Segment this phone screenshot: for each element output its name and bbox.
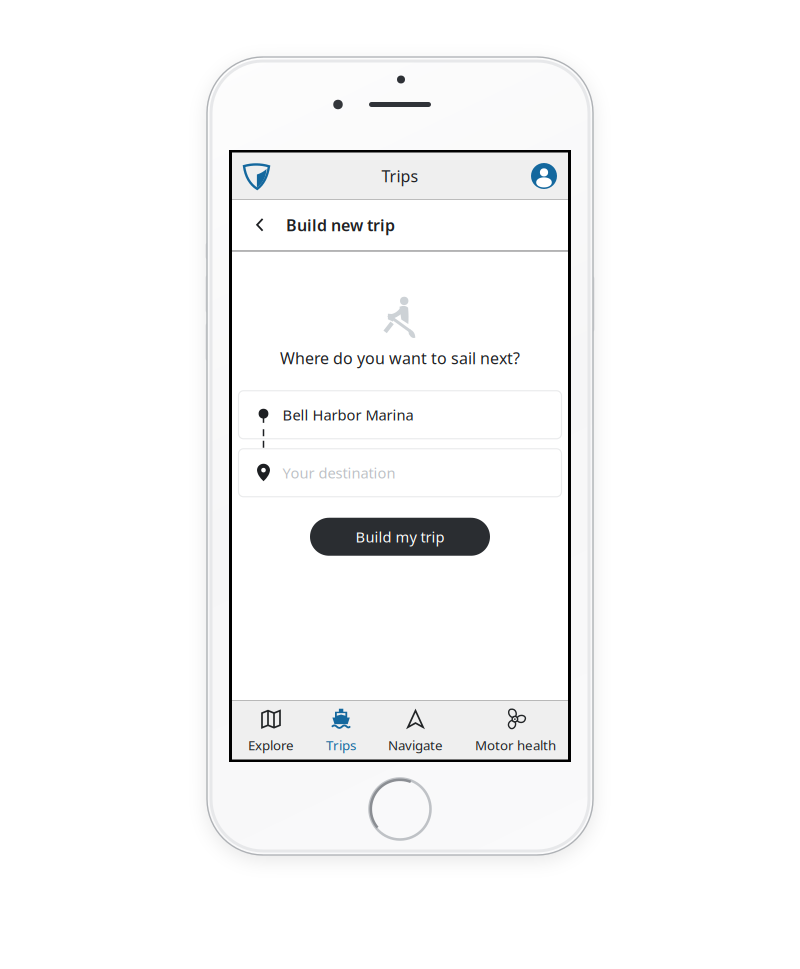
staticText: Build my trip (355, 527, 444, 546)
staticText: Where do you want to sail next? (280, 347, 520, 369)
button[interactable]: Build new trip (232, 199, 568, 250)
button[interactable]: Build my trip (310, 518, 490, 556)
staticText: Your destination (282, 463, 395, 482)
staticText: Motor health (475, 736, 556, 754)
staticText: Bell Harbor Marina (282, 405, 413, 424)
button[interactable]: Motor health (459, 700, 572, 759)
button[interactable]: Navigate (372, 700, 459, 759)
staticText: Trips (326, 736, 356, 754)
button[interactable]: Account (531, 163, 568, 189)
staticText: Navigate (388, 736, 443, 754)
staticText: Explore (248, 736, 294, 754)
button[interactable]: Trips (310, 700, 372, 759)
button[interactable]: Explore (232, 700, 310, 759)
staticText: Build new trip (286, 214, 395, 236)
staticText: Trips (381, 165, 418, 187)
button[interactable]: Home (232, 161, 271, 190)
